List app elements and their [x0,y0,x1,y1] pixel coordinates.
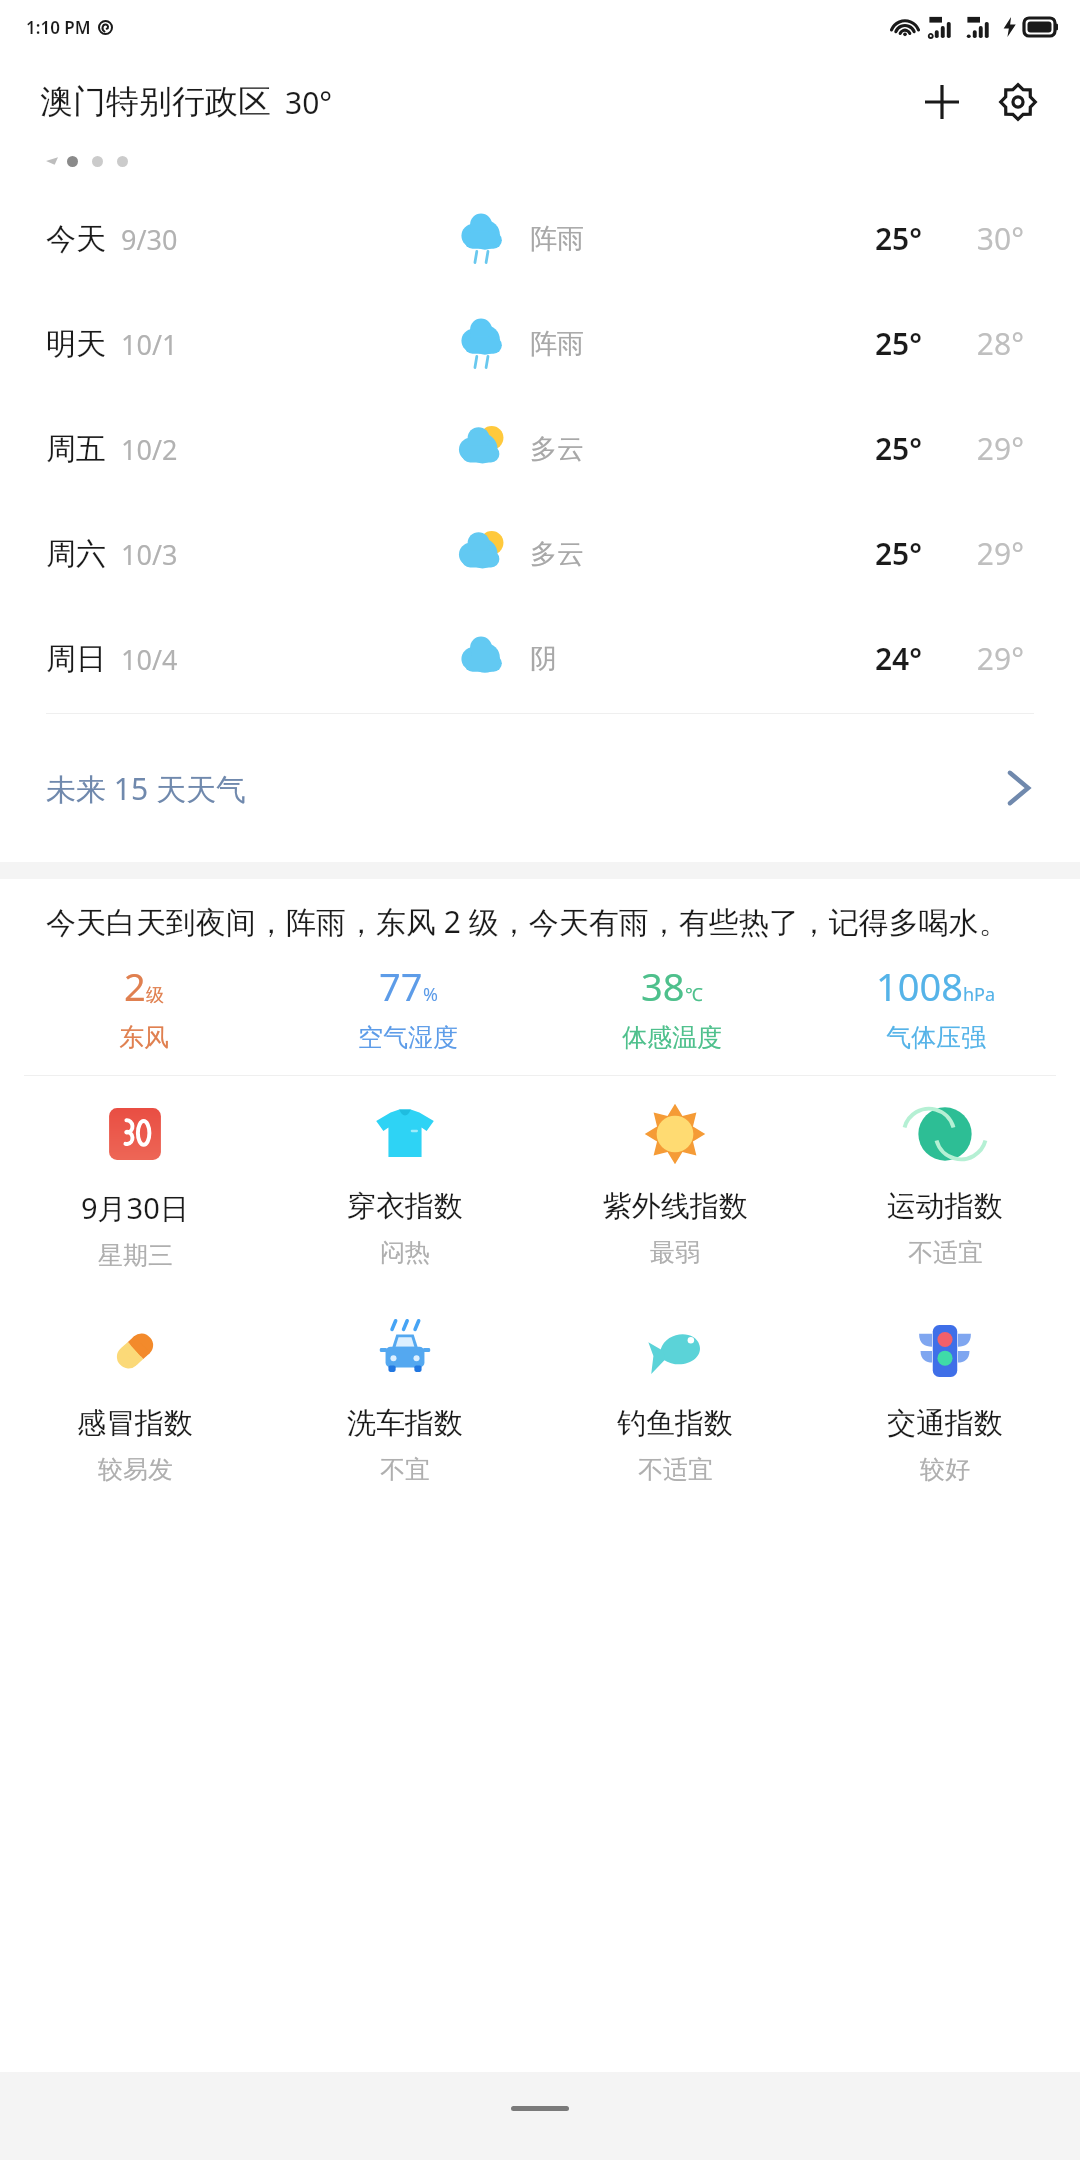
staticText: 29° [932,428,1024,469]
staticText: 10/4 [121,641,178,678]
staticText: 25° [830,428,922,469]
staticText: 9月30日 [81,1188,189,1228]
staticText: 较易发 [98,1454,173,1485]
button[interactable]: Add city [904,64,980,140]
staticText: % [423,982,438,1007]
button[interactable]: 钓鱼指数 [540,1315,810,1485]
staticText: 10/1 [121,326,178,363]
staticText: 阵雨 [530,327,584,361]
staticText: 今天白天到夜间，阵雨，东风 2 级，今天有雨，有些热了，记得多喝水。 [46,901,1038,942]
staticText: 交通指数 [887,1405,1003,1442]
button[interactable]: 感冒指数 [0,1315,270,1485]
staticText: 洗车指数 [347,1405,463,1442]
staticText: 级 [146,984,164,1007]
button[interactable]: 明天 [0,291,1080,396]
staticText: 25° [830,533,922,574]
button[interactable]: 9月30日 [0,1098,270,1271]
staticText: 1008 [876,960,963,1012]
staticText: 周六 [46,535,106,573]
button[interactable]: 紫外线指数 [540,1098,810,1268]
staticText: 77 [379,960,423,1012]
staticText: 东风 [119,1022,169,1053]
button[interactable]: Settings [980,64,1056,140]
button[interactable]: 周日 [0,606,1080,711]
staticText: ℃ [685,982,703,1007]
button[interactable]: 2 [12,960,276,1053]
staticText: 29° [932,533,1024,574]
staticText: 30° [932,218,1024,259]
button[interactable]: 运动指数 [810,1098,1080,1268]
button[interactable]: 周六 [0,501,1080,606]
staticText: 运动指数 [887,1188,1003,1225]
staticText: 25° [830,323,922,364]
staticText: 紫外线指数 [603,1188,748,1225]
button[interactable]: 38 [540,960,804,1053]
staticText: 29° [932,638,1024,679]
staticText: 不适宜 [638,1454,713,1485]
staticText: 多云 [530,432,584,466]
staticText: 闷热 [380,1237,430,1268]
staticText: 明天 [46,325,106,363]
staticText: 2 [124,960,146,1012]
staticText: 体感温度 [622,1022,722,1053]
staticText: 今天 [46,220,106,258]
staticText: 1:10 PM [26,16,91,39]
staticText: 周日 [46,640,106,678]
staticText: 不宜 [380,1454,430,1485]
staticText: 阴 [530,642,557,676]
staticText: 周五 [46,430,106,468]
staticText: 穿衣指数 [347,1188,463,1225]
staticText: 钓鱼指数 [617,1405,733,1442]
staticText: 多云 [530,537,584,571]
staticText: 24° [830,638,922,679]
staticText: 最弱 [650,1237,700,1268]
staticText: 25° [830,218,922,259]
button[interactable]: 周五 [0,396,1080,501]
staticText: 气体压强 [886,1022,986,1053]
button[interactable]: 洗车指数 [270,1315,540,1485]
staticText: 未来 15 天天气 [46,768,246,809]
button[interactable]: 未来 15 天天气 [0,714,1080,862]
staticText: 10/2 [121,431,178,468]
staticText: 30° [285,82,333,123]
staticText: 感冒指数 [77,1405,193,1442]
staticText: 星期三 [98,1240,173,1271]
button[interactable]: 穿衣指数 [270,1098,540,1268]
staticText: 较好 [920,1454,970,1485]
staticText: 空气湿度 [358,1022,458,1053]
button[interactable]: 77 [276,960,540,1053]
staticText: 阵雨 [530,222,584,256]
staticText: 9/30 [121,221,178,258]
staticText: 10/3 [121,536,178,573]
staticText: 不适宜 [908,1237,983,1268]
staticText: 28° [932,323,1024,364]
button[interactable]: 1008 [804,960,1068,1053]
button[interactable]: 交通指数 [810,1315,1080,1485]
button[interactable]: 今天 [0,186,1080,291]
staticText: 澳门特别行政区 [40,81,271,123]
staticText: 38 [641,960,685,1012]
staticText: hPa [963,982,996,1007]
